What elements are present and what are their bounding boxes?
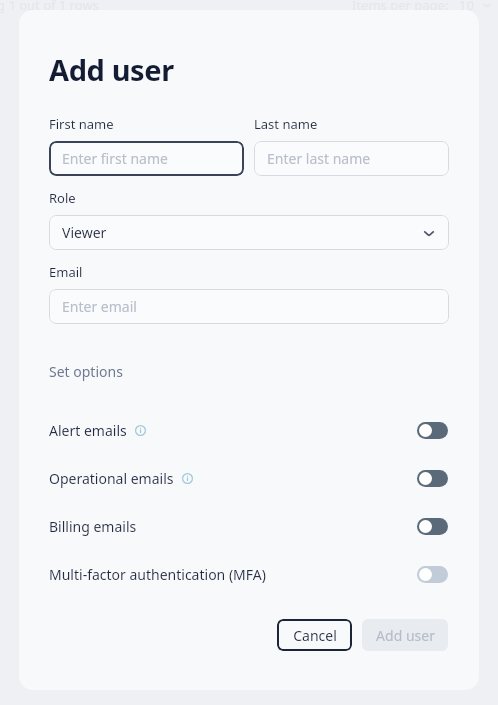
staticText: Enter first name bbox=[62, 149, 168, 168]
button[interactable]: Alert emails bbox=[417, 422, 448, 439]
button[interactable]: Cancel bbox=[277, 619, 352, 651]
button[interactable]: Enter last name bbox=[254, 141, 449, 176]
staticText: Email bbox=[49, 263, 83, 281]
button[interactable]: Enter first name bbox=[49, 141, 244, 176]
staticText: Cancel bbox=[293, 626, 337, 645]
staticText: Alert emails bbox=[49, 421, 127, 440]
staticText: Enter email bbox=[62, 297, 137, 316]
staticText: Add user bbox=[49, 50, 174, 89]
button[interactable]: Add user bbox=[362, 619, 448, 651]
staticText: Operational emails bbox=[49, 469, 174, 488]
staticText: Role bbox=[49, 189, 76, 207]
staticText: Viewer bbox=[62, 223, 422, 242]
button[interactable]: Alert emails bbox=[19, 406, 479, 454]
staticText: Add user bbox=[376, 626, 435, 645]
button[interactable]: Multi-factor authentication (MFA) bbox=[19, 550, 479, 598]
button[interactable]: Billing emails bbox=[19, 502, 479, 550]
staticText: Enter last name bbox=[267, 149, 371, 168]
other: More information bbox=[135, 425, 146, 436]
staticText: Billing emails bbox=[49, 517, 137, 536]
staticText: g 1 out of 1 rows bbox=[0, 0, 99, 14]
button[interactable]: Operational emails bbox=[19, 454, 479, 502]
staticText: Multi-factor authentication (MFA) bbox=[49, 565, 266, 584]
button[interactable]: Billing emails bbox=[417, 518, 448, 535]
button[interactable]: Operational emails bbox=[417, 470, 448, 487]
staticText: Items per page: bbox=[352, 0, 449, 14]
button[interactable]: Enter email bbox=[49, 289, 449, 324]
button[interactable]: Viewer bbox=[49, 215, 449, 250]
button[interactable]: Multi-factor authentication (MFA) bbox=[417, 566, 448, 583]
staticText: Last name bbox=[254, 115, 318, 133]
other: More information bbox=[182, 473, 193, 484]
staticText: 10 bbox=[459, 0, 474, 14]
staticText: Set options bbox=[49, 362, 123, 381]
staticText: First name bbox=[49, 115, 114, 133]
